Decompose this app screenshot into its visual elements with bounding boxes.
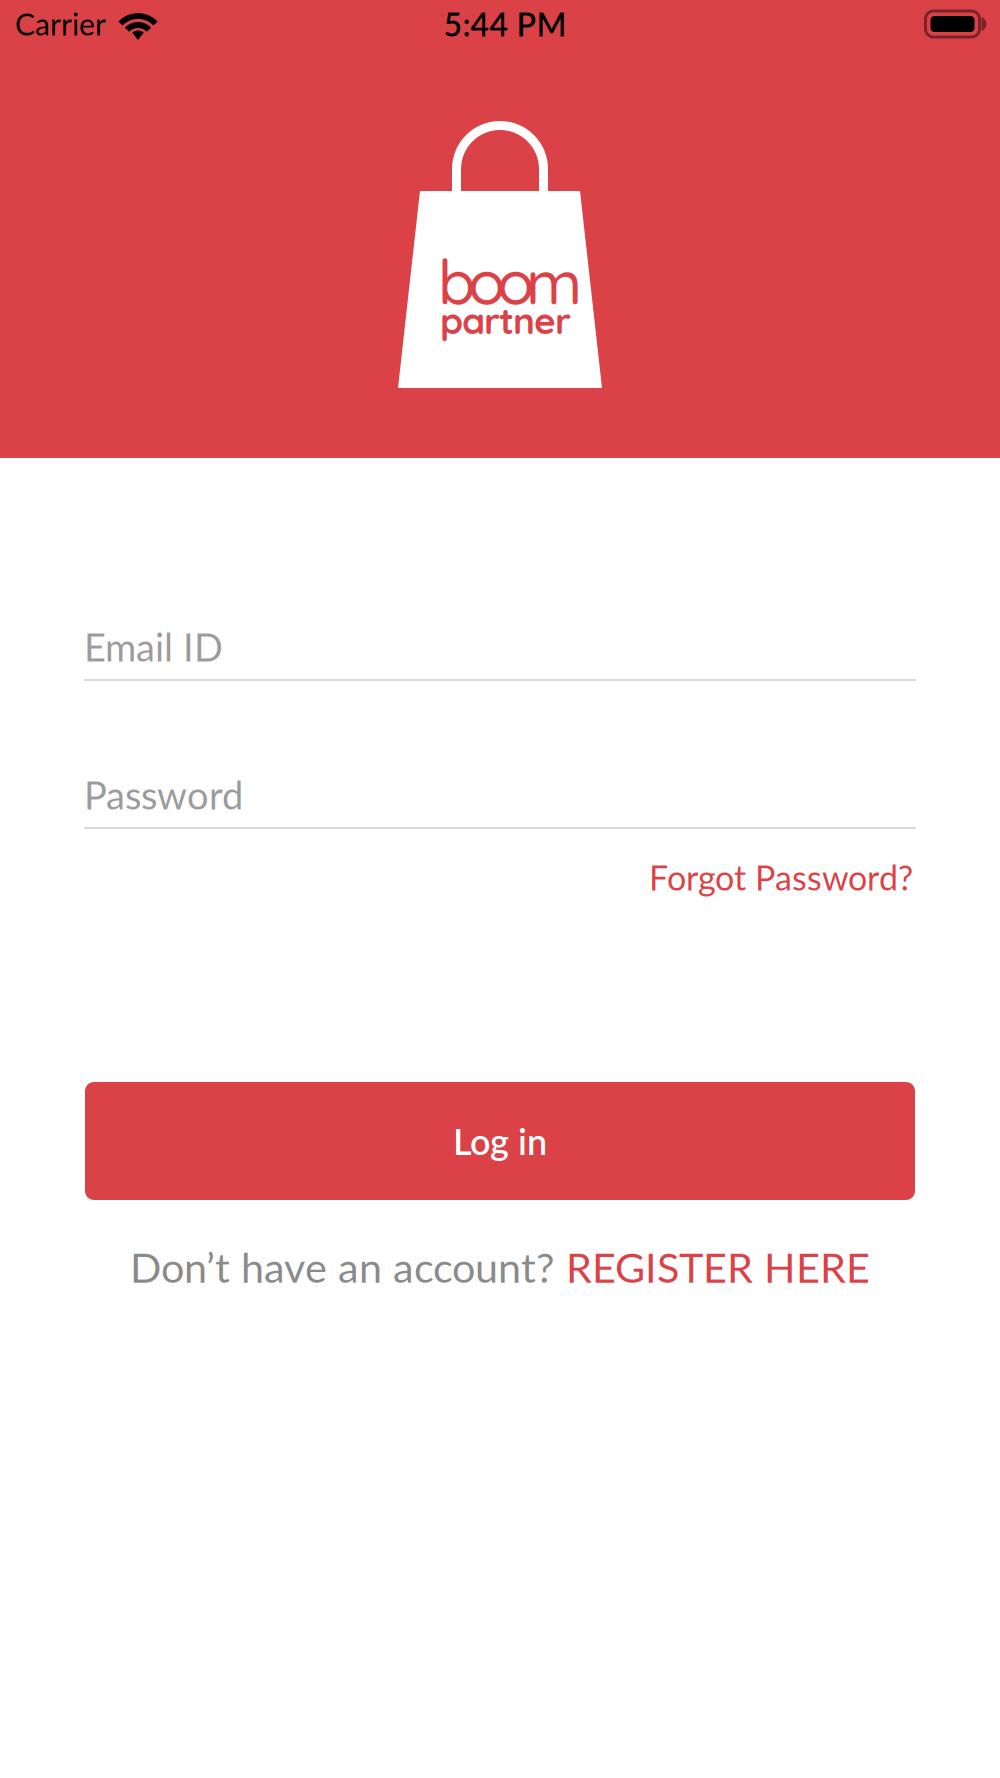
button[interactable]: Forgot Password? <box>649 857 913 898</box>
button[interactable]: Email ID <box>84 624 916 681</box>
staticText: Carrier <box>15 6 106 42</box>
staticText: REGISTER HERE <box>566 1242 870 1292</box>
button[interactable]: Don’t have an account? <box>130 1242 870 1292</box>
staticText: Log in <box>453 1119 547 1163</box>
staticText: boom <box>438 243 582 320</box>
staticText: Password <box>84 772 243 818</box>
staticText: Email ID <box>84 624 223 670</box>
staticText: 5:44 PM <box>443 5 566 43</box>
staticText: Don’t have an account? <box>130 1242 554 1292</box>
button[interactable]: Password <box>84 772 916 829</box>
button[interactable]: Log in <box>85 1082 915 1200</box>
staticText: Forgot Password? <box>649 857 913 898</box>
staticText: partner <box>440 297 571 343</box>
